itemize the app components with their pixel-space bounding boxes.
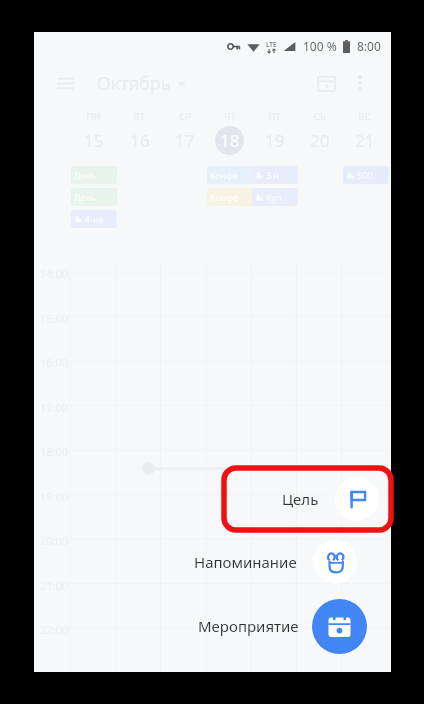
staticText: 18 [220,129,240,152]
staticText: Куп [266,191,282,203]
staticText: 3 н [266,169,280,181]
staticText: 21:00 [40,578,69,593]
button[interactable]: День [71,188,117,206]
staticText: ЧТ [224,110,236,123]
staticText: Октябрь [97,71,171,96]
button[interactable]: Октябрь [94,68,189,99]
button[interactable]: Конфе [207,188,253,206]
staticText: 22:00 [40,622,69,637]
staticText: ПТ [268,110,281,123]
staticText: 17 [175,129,195,152]
staticText: ПН [86,110,101,123]
staticText: 16 [130,129,150,152]
staticText: 19:00 [40,489,69,504]
button[interactable]: 3 н [252,166,298,184]
button[interactable]: Мероприятие [198,595,367,657]
staticText: 20 [310,129,330,152]
staticText: 19 [265,129,285,152]
staticText: День [74,191,96,203]
button[interactable]: 4-не [71,210,117,228]
staticText: 500 [357,169,373,181]
staticText: 20:00 [40,533,69,548]
staticText: 100 % [303,38,337,54]
staticText: День [74,169,96,181]
button[interactable]: Куп [252,188,298,206]
staticText: ВС [358,110,371,123]
staticText: 18:00 [40,444,69,459]
staticText: 21 [355,129,375,152]
staticText: Цель [282,489,319,509]
staticText: 8:00 [357,38,381,54]
staticText: ВТ [133,110,145,123]
button[interactable]: Open navigation menu [48,66,82,100]
button[interactable]: Конфе [207,166,253,184]
staticText: 15:00 [40,311,69,326]
staticText: СБ [314,110,326,123]
staticText: 15 [84,129,104,152]
button[interactable]: День [71,166,117,184]
staticText: LTE [266,40,277,49]
staticText: 4-не [85,213,104,225]
button[interactable]: Go to today [309,66,343,100]
staticText: Конфе [210,169,238,181]
staticText: Напоминание [194,552,297,572]
button[interactable]: Напоминание [194,537,357,587]
staticText: 14:00 [40,266,69,281]
staticText: Конфе [210,191,238,203]
button[interactable]: ЧТ [207,106,252,164]
button[interactable]: Цель [224,468,391,530]
staticText: Мероприятие [198,616,299,636]
staticText: 16:00 [40,355,69,370]
staticText: СР [179,110,191,123]
button[interactable]: 500 [343,166,389,184]
staticText: 17:00 [40,400,69,415]
